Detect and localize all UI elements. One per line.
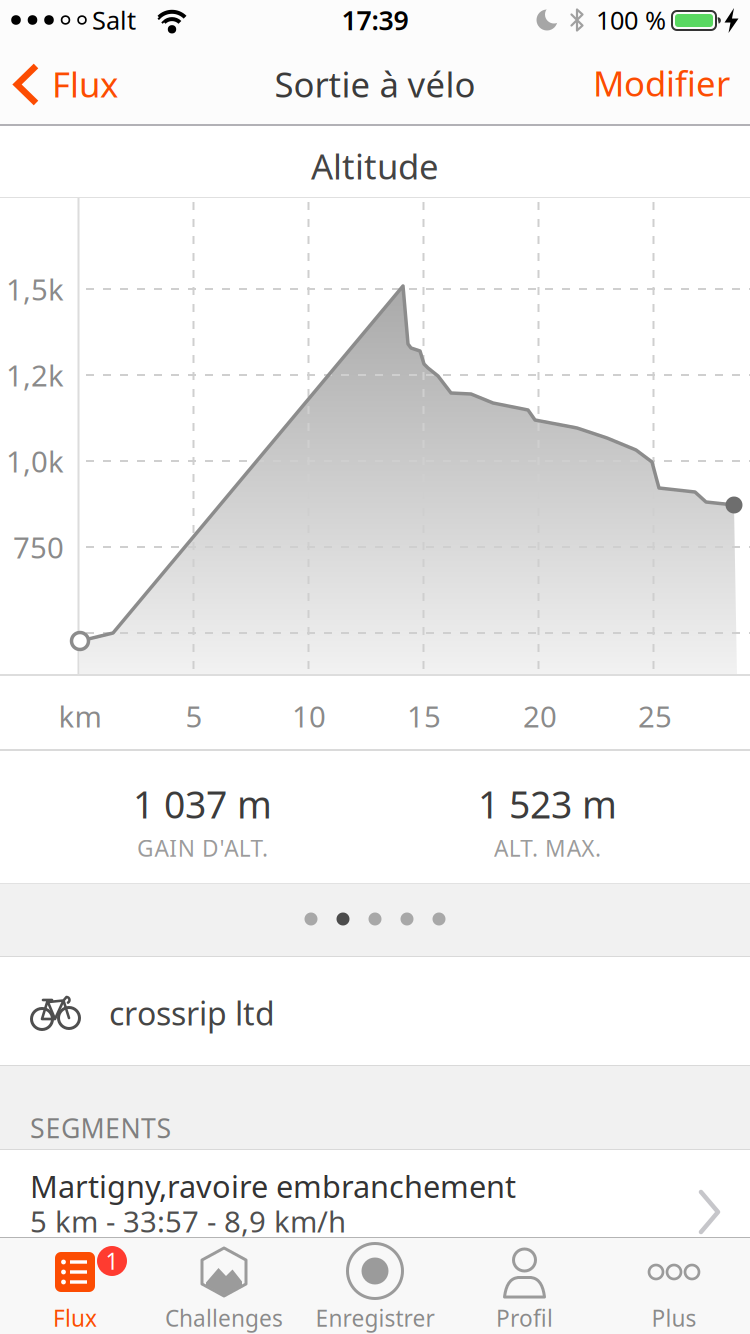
- staticText: Modifier: [593, 60, 730, 106]
- staticText: 100 %: [596, 3, 666, 37]
- staticText: GAIN D'ALT.: [137, 833, 268, 863]
- button[interactable]: Enregistrer: [300, 1237, 450, 1334]
- staticText: km: [58, 696, 101, 735]
- staticText: 750: [13, 527, 64, 566]
- staticText: 17:39: [341, 2, 408, 38]
- button[interactable]: Flux: [0, 40, 140, 126]
- staticText: ALT. MAX.: [494, 833, 601, 863]
- staticText: 1 523 m: [478, 779, 617, 829]
- staticText: Plus: [651, 1303, 696, 1333]
- staticText: 1,2k: [6, 355, 64, 394]
- button[interactable]: 1: [0, 1237, 150, 1334]
- staticText: crossrip ltd: [109, 992, 275, 1034]
- staticText: Flux: [53, 1303, 97, 1333]
- staticText: 20: [523, 696, 557, 735]
- button[interactable]: crossrip ltd: [0, 957, 750, 1066]
- staticText: Enregistrer: [315, 1303, 434, 1333]
- staticText: Altitude: [311, 143, 439, 189]
- staticText: Salt: [92, 3, 136, 37]
- staticText: Martigny,ravoire embranchement: [30, 1166, 516, 1206]
- staticText: 5: [185, 696, 202, 735]
- button[interactable]: Martigny,ravoire embranchement: [0, 1150, 750, 1237]
- staticText: Sortie à vélo: [274, 61, 475, 107]
- staticText: Flux: [52, 61, 118, 107]
- staticText: Profil: [496, 1303, 553, 1333]
- staticText: 1: [105, 1246, 118, 1276]
- staticText: Challenges: [165, 1303, 283, 1333]
- staticText: 25: [638, 696, 672, 735]
- button[interactable]: Challenges: [150, 1237, 300, 1334]
- staticText: 1,5k: [6, 269, 64, 308]
- button[interactable]: Modifier: [430, 40, 730, 126]
- button[interactable]: Plus: [600, 1237, 750, 1334]
- staticText: 10: [292, 696, 326, 735]
- staticText: 1 037 m: [133, 779, 272, 829]
- button[interactable]: Profil: [450, 1237, 600, 1334]
- staticText: 1,0k: [6, 441, 64, 480]
- staticText: SEGMENTS: [30, 1110, 171, 1146]
- staticText: 15: [407, 696, 441, 735]
- staticText: 5 km - 33:57 - 8,9 km/h: [30, 1201, 346, 1240]
